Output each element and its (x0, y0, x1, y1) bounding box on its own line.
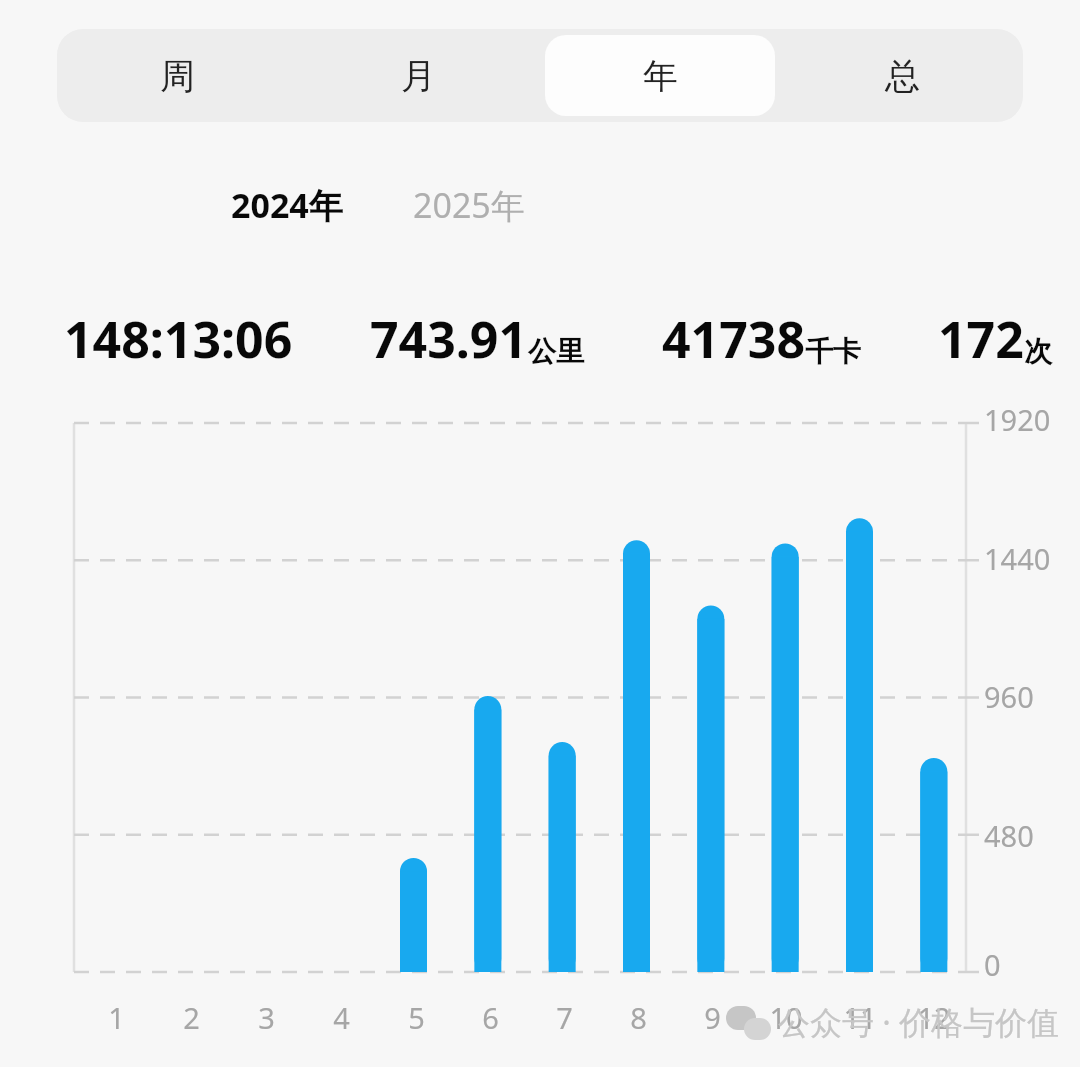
staticText: 年 (643, 54, 678, 98)
button[interactable]: 总 (787, 35, 1017, 116)
staticText: 9 (704, 998, 721, 1037)
button[interactable]: 月 (304, 35, 533, 116)
staticText: 148:13:06 (64, 305, 293, 373)
staticText: 5 (408, 998, 425, 1037)
button[interactable]: 2024年 (225, 176, 349, 234)
staticText: 743.91 (370, 305, 528, 373)
button[interactable]: 周 (63, 35, 292, 116)
staticText: 1 (108, 998, 125, 1037)
staticText: 周 (160, 54, 195, 98)
staticText: 8 (630, 998, 647, 1037)
staticText: 2 (183, 998, 200, 1037)
other: WeChat watermark (724, 1002, 774, 1042)
staticText: 公里 (528, 334, 584, 369)
staticText: 6 (482, 998, 499, 1037)
staticText: 480 (984, 816, 1034, 855)
staticText: 11 (843, 998, 877, 1037)
staticText: 总 (885, 54, 920, 98)
staticText: 12 (917, 998, 951, 1037)
staticText: 1440 (984, 539, 1051, 578)
staticText: 41738 (662, 305, 805, 373)
staticText: 千卡 (805, 334, 861, 369)
staticText: 1920 (984, 400, 1051, 439)
staticText: 2024年 (231, 182, 343, 228)
staticText: 960 (984, 677, 1034, 716)
staticText: 次 (1024, 334, 1052, 369)
button[interactable]: 年 (545, 35, 775, 116)
staticText: 10 (769, 998, 803, 1037)
staticText: 0 (984, 945, 1001, 984)
staticText: 4 (333, 998, 350, 1037)
staticText: 公众号 · 价格与价值 (778, 1000, 1060, 1044)
staticText: 7 (556, 998, 573, 1037)
staticText: 2025年 (413, 182, 525, 228)
staticText: 172 (938, 305, 1024, 373)
staticText: 3 (258, 998, 275, 1037)
button[interactable]: 2025年 (407, 176, 531, 234)
staticText: 月 (401, 54, 436, 98)
